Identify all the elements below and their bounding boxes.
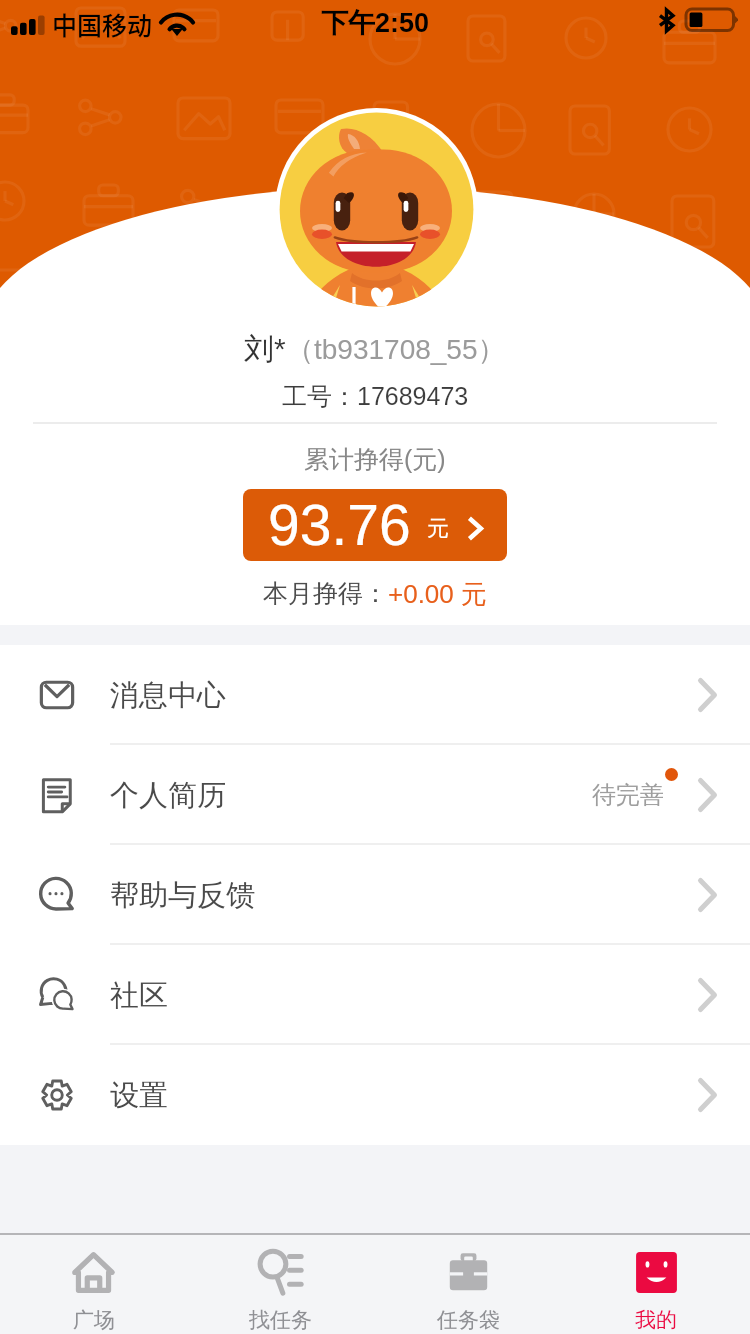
staticText: 社区 [110, 977, 168, 1014]
staticText: 工号：17689473 [282, 381, 469, 412]
button[interactable]: 个人简历 [0, 745, 750, 845]
button[interactable]: 帮助与反馈 [0, 845, 750, 945]
button[interactable]: 找任务 [187, 1235, 374, 1334]
button[interactable]: 设置 [0, 1045, 750, 1145]
staticText: 广场 [73, 1307, 115, 1333]
staticText: 待完善 [592, 780, 664, 810]
button[interactable]: 任务袋 [374, 1235, 562, 1334]
staticText: 中国移动 [52, 6, 153, 42]
staticText: 找任务 [249, 1307, 312, 1333]
staticText: 93.76 [268, 493, 411, 557]
button[interactable]: 广场 [0, 1235, 187, 1334]
staticText: 累计挣得(元) [304, 444, 446, 475]
button[interactable]: 我的 [562, 1235, 750, 1334]
staticText: 我的 [635, 1307, 677, 1333]
button[interactable]: 社区 [0, 945, 750, 1045]
staticText: 下午2:50 [321, 6, 430, 40]
staticText: 本月挣得： [263, 578, 388, 609]
staticText: 任务袋 [437, 1307, 500, 1333]
staticText: 刘* [244, 330, 286, 368]
button[interactable]: 93.76 [243, 489, 507, 561]
staticText: +0.00 元 [388, 578, 488, 611]
staticText: 设置 [110, 1077, 168, 1114]
staticText: 消息中心 [110, 677, 226, 714]
button[interactable]: 消息中心 [0, 645, 750, 745]
staticText: 元 [427, 515, 449, 543]
staticText: 帮助与反馈 [110, 877, 255, 914]
staticText: （tb931708_55） [286, 332, 506, 367]
staticText: 个人简历 [110, 777, 226, 814]
